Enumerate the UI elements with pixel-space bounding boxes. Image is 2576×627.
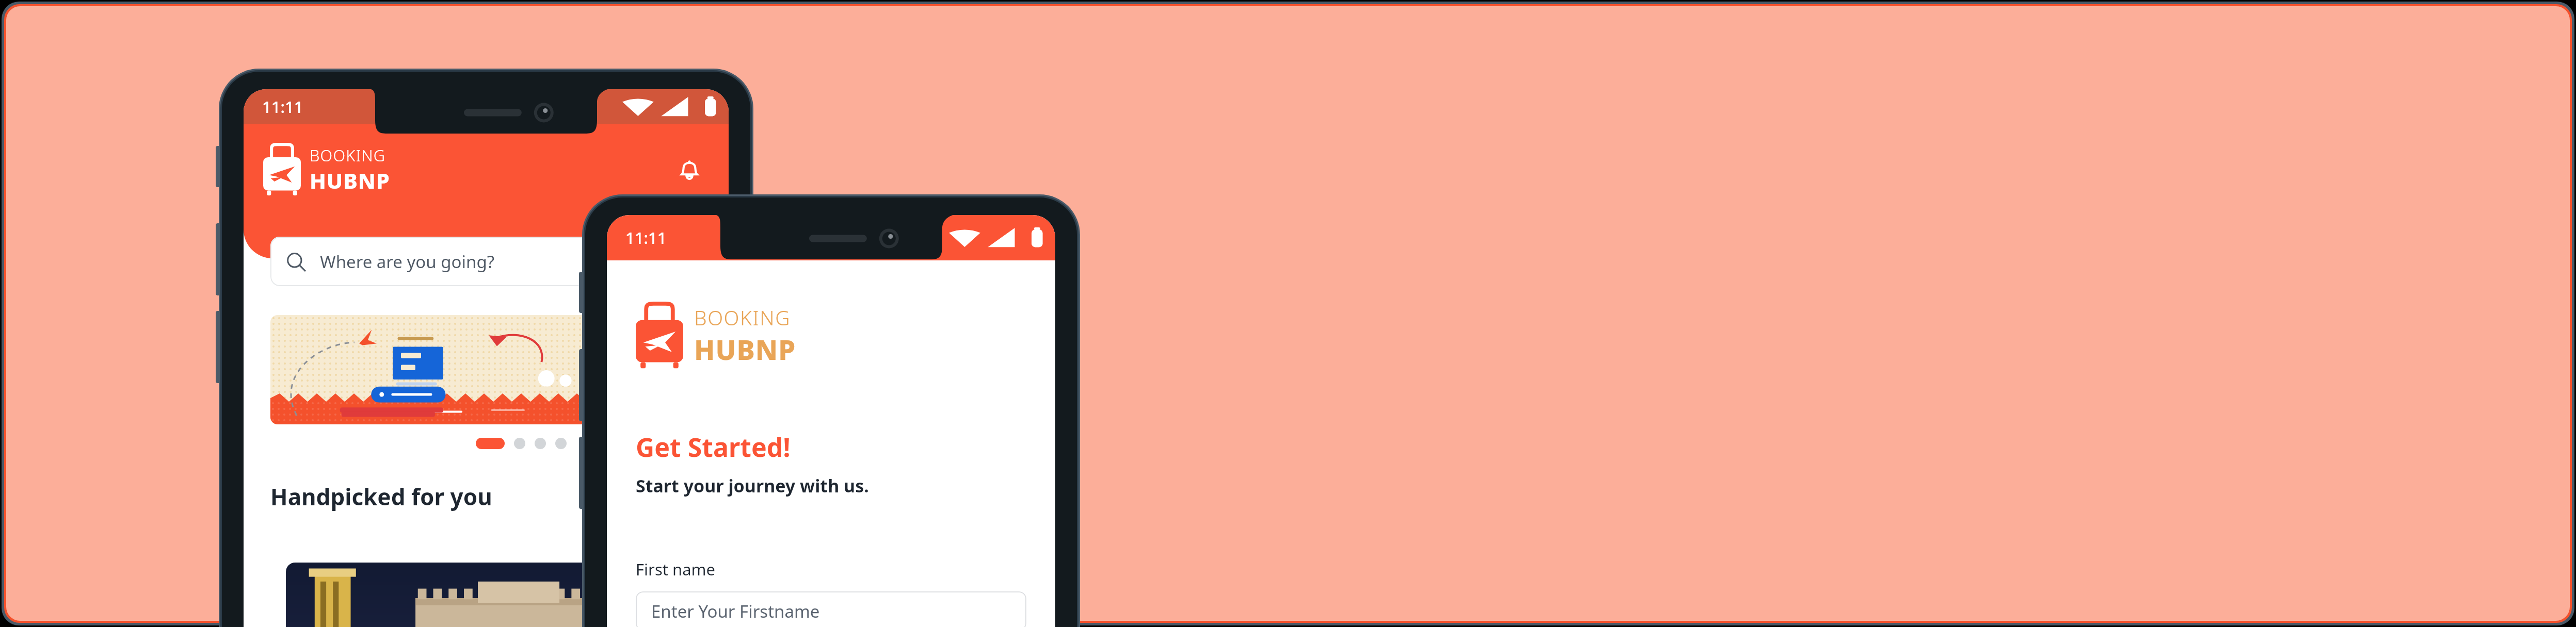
- staticText: Get Started!: [636, 430, 791, 465]
- button[interactable]: Where are you going?: [270, 237, 729, 286]
- staticText: 11:11: [262, 96, 303, 118]
- staticText: BOOKING: [694, 304, 791, 331]
- button[interactable]: [270, 315, 729, 424]
- staticText: HUBNP: [694, 331, 796, 368]
- staticText: BOOKING: [310, 144, 386, 166]
- staticText: First name: [636, 558, 716, 580]
- button[interactable]: [270, 543, 729, 627]
- staticText: 11:11: [625, 227, 667, 249]
- button[interactable]: Enter Your Firstname: [636, 591, 1026, 627]
- staticText: Handpicked for you: [270, 481, 492, 512]
- staticText: Where are you going?: [320, 250, 495, 273]
- staticText: Start your journey with us.: [636, 474, 869, 498]
- staticText: HUBNP: [310, 166, 390, 195]
- button[interactable]: Notifications: [670, 150, 709, 189]
- staticText: Enter Your Firstname: [651, 600, 820, 623]
